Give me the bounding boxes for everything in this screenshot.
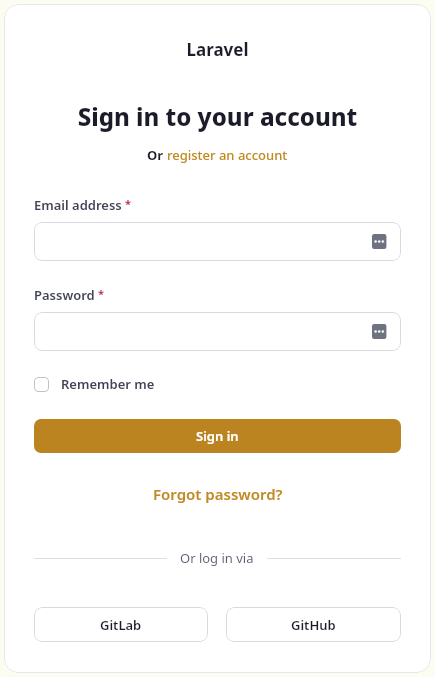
staticText: Forgot password?	[153, 484, 283, 504]
button[interactable]: Remember me	[34, 375, 155, 393]
staticText: GitHub	[291, 616, 336, 634]
staticText: *	[98, 286, 104, 301]
staticText: Sign in to your account	[34, 100, 401, 133]
staticText: GitLab	[100, 616, 142, 634]
button[interactable]: register an account	[167, 146, 288, 164]
staticText: Password	[34, 286, 95, 304]
button[interactable]	[34, 222, 401, 261]
staticText: Remember me	[61, 375, 155, 393]
staticText: Or log in via	[180, 549, 254, 567]
button[interactable]: Forgot password?	[34, 484, 401, 504]
staticText: Laravel	[34, 38, 401, 61]
staticText: Or	[147, 146, 167, 164]
staticText: Sign in	[196, 427, 239, 445]
staticText: *	[125, 196, 131, 211]
button[interactable]: GitLab	[34, 607, 208, 642]
staticText: Email address	[34, 196, 122, 214]
button[interactable]: Sign in	[34, 419, 401, 453]
button[interactable]: GitHub	[226, 607, 401, 642]
button[interactable]	[34, 312, 401, 351]
staticText: register an account	[167, 146, 288, 164]
